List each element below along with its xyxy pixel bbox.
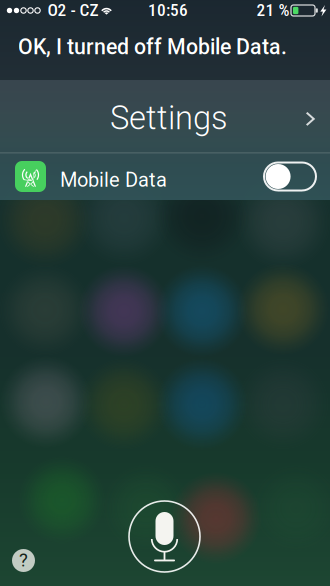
staticText: OK, I turned off Mobile Data.: [18, 34, 287, 59]
button[interactable]: Settings: [0, 73, 330, 153]
staticText: O2 - CZ: [47, 0, 98, 20]
button[interactable]: Mobile Data: [0, 153, 330, 200]
button[interactable]: Start dictation: [129, 501, 200, 572]
staticText: 21 %: [256, 0, 289, 20]
staticText: Settings: [110, 99, 228, 137]
staticText: Mobile Data: [60, 168, 167, 192]
button[interactable]: Help: [12, 549, 35, 572]
staticText: ?: [19, 549, 28, 571]
staticText: 10:56: [148, 0, 188, 20]
